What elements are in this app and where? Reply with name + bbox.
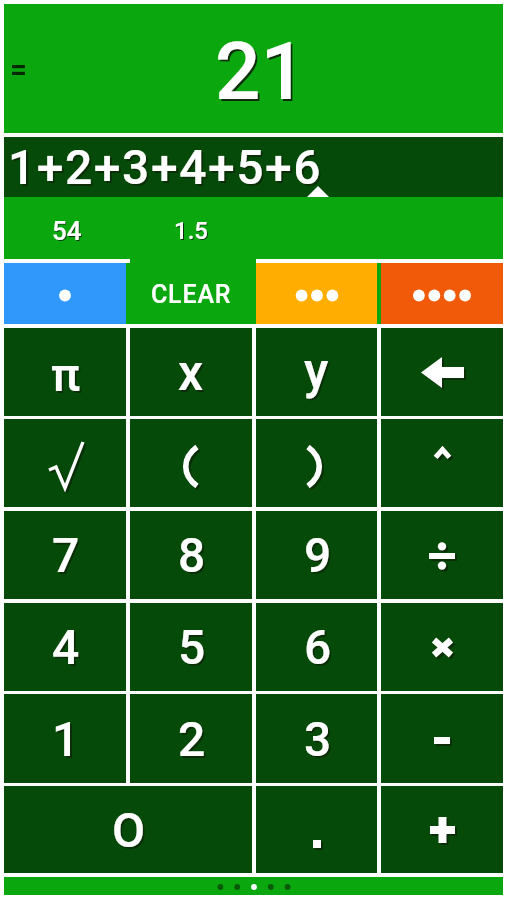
staticText: 3 [304, 711, 332, 767]
staticText: 8 [180, 529, 208, 585]
staticText: 5 [178, 619, 206, 675]
button[interactable]: 7 [4, 511, 126, 599]
button[interactable]: 9 [256, 511, 377, 599]
staticText: 1+2+3+4+5+6 [10, 141, 325, 197]
staticText: 8 [178, 527, 206, 583]
button[interactable]: 54 [4, 197, 130, 259]
button[interactable]: Open bracket [130, 419, 252, 507]
staticText: y [306, 344, 331, 403]
button[interactable]: x [130, 328, 252, 416]
button[interactable]: Clear [130, 263, 252, 324]
staticText: 54 [52, 216, 82, 246]
button[interactable]: Multiply [381, 603, 503, 691]
staticText: 1.5 [174, 217, 208, 245]
staticText: 6 [304, 619, 332, 675]
button[interactable]: 0 [4, 786, 252, 873]
button[interactable]: Decimal point [4, 263, 126, 324]
button[interactable]: Decimal [256, 786, 377, 873]
staticText: 4 [52, 619, 80, 675]
button[interactable]: 1.5 [130, 197, 256, 259]
staticText: 1+2+3+4+5+6 [8, 139, 323, 195]
staticText: 7 [52, 527, 80, 583]
button[interactable]: Page indicator [4, 877, 503, 895]
button[interactable]: 8 [130, 511, 252, 599]
staticText: 5 [180, 621, 208, 677]
button[interactable]: Backspace [381, 328, 503, 416]
staticText: 3 [306, 713, 334, 769]
button[interactable]: Close bracket [256, 419, 377, 507]
button[interactable]: y [256, 328, 377, 416]
staticText: O [114, 804, 148, 860]
staticText: 2 [180, 713, 208, 769]
button[interactable]: History [0, 52, 36, 88]
staticText: 9 [304, 527, 332, 583]
staticText: 1 [52, 711, 80, 767]
staticText: y [304, 342, 329, 401]
staticText: 1.5 [175, 218, 209, 246]
button[interactable]: 5 [130, 603, 252, 691]
staticText: 4 [54, 621, 82, 677]
button[interactable]: pi [4, 328, 126, 416]
staticText: π [51, 347, 81, 402]
staticText: 9 [306, 529, 334, 585]
staticText: 7 [54, 529, 82, 585]
staticText: 21 [215, 25, 306, 119]
button[interactable]: 1 [4, 694, 126, 783]
button[interactable]: Divide [381, 511, 503, 599]
staticText: 6 [306, 621, 334, 677]
staticText: x [178, 344, 204, 403]
button[interactable]: Square root [4, 419, 126, 507]
button[interactable]: Power [381, 419, 503, 507]
button[interactable]: More [256, 263, 377, 324]
staticText: 54 [53, 217, 83, 247]
staticText: 2 [178, 711, 206, 767]
staticText: O [112, 802, 146, 858]
button[interactable]: 2 [130, 694, 252, 783]
button[interactable]: 6 [256, 603, 377, 691]
staticText: 1 [54, 713, 82, 769]
staticText: 21 [217, 27, 308, 121]
staticText: x [180, 346, 206, 405]
staticText: CLEAR [151, 280, 232, 309]
button[interactable]: Options [381, 263, 503, 324]
button[interactable]: Minus [381, 694, 503, 783]
staticText: π [53, 349, 83, 404]
button[interactable]: 3 [256, 694, 377, 783]
button[interactable]: Plus [381, 786, 503, 873]
button[interactable]: 1+2+3+4+5+6 [4, 137, 503, 197]
button[interactable]: 4 [4, 603, 126, 691]
